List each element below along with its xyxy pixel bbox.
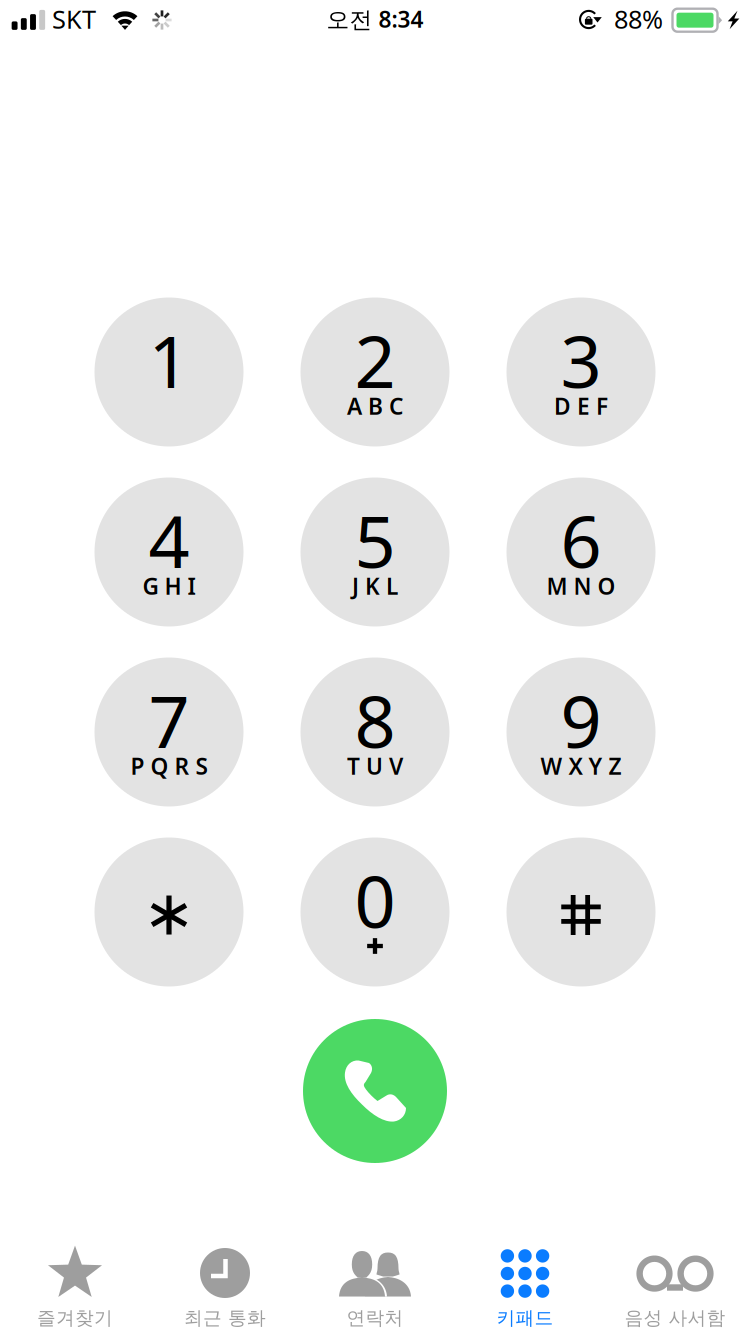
staticText: 2	[354, 312, 395, 408]
button[interactable]: 0	[300, 837, 449, 986]
button[interactable]: 5	[300, 477, 449, 626]
staticText: 연락처	[346, 1306, 403, 1329]
button[interactable]: 8	[300, 657, 449, 806]
button[interactable]: 3	[506, 297, 655, 446]
button[interactable]: 6	[506, 477, 655, 626]
staticText: 최근 통화	[184, 1306, 266, 1329]
button[interactable]: 통화	[303, 1019, 447, 1163]
staticText: M N O	[546, 571, 615, 601]
button[interactable]: 키패드	[450, 1244, 600, 1334]
button[interactable]: 4	[94, 477, 243, 626]
staticText: SKT	[52, 2, 96, 36]
staticText: 오전 8:34	[326, 4, 423, 34]
button[interactable]: 9	[506, 657, 655, 806]
staticText: 키패드	[496, 1306, 553, 1329]
staticText: 8	[354, 672, 395, 768]
staticText: 6	[560, 492, 601, 588]
staticText: 5	[354, 492, 395, 588]
button[interactable]: 2	[300, 297, 449, 446]
button[interactable]: 연락처	[300, 1244, 450, 1334]
button[interactable]: 1	[94, 297, 243, 446]
button[interactable]	[506, 837, 655, 986]
staticText: 3	[560, 312, 601, 408]
staticText: W X Y Z	[540, 751, 621, 781]
staticText: P Q R S	[130, 751, 207, 781]
staticText: 0	[354, 852, 395, 948]
staticText: 9	[560, 672, 601, 768]
staticText: 88%	[614, 2, 663, 36]
staticText: A B C	[347, 391, 403, 421]
staticText: 4	[148, 492, 189, 588]
button[interactable]: 7	[94, 657, 243, 806]
staticText: 음성 사서함	[624, 1306, 725, 1329]
button[interactable]: 즐겨찾기	[0, 1244, 150, 1334]
button[interactable]: 최근 통화	[150, 1244, 300, 1334]
button[interactable]	[94, 837, 243, 986]
staticText: T U V	[347, 751, 403, 781]
staticText: 7	[148, 672, 189, 768]
staticText: 즐겨찾기	[37, 1306, 113, 1329]
button[interactable]: 음성 사서함	[600, 1244, 750, 1334]
staticText: 1	[148, 312, 189, 408]
staticText: G H I	[142, 571, 195, 601]
staticText: J K L	[352, 571, 398, 601]
staticText: D E F	[554, 391, 608, 421]
